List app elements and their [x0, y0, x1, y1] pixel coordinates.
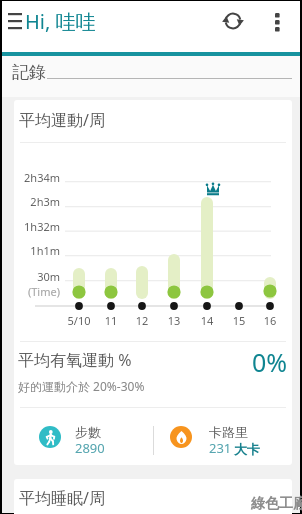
staticText: 記錄 [12, 62, 46, 83]
staticText: 231 [209, 439, 232, 457]
staticText: Hi, 哇哇 [25, 8, 96, 35]
staticText: 大卡 [234, 441, 260, 457]
staticText: 2h3m [14, 194, 60, 209]
staticText: 12 [126, 313, 158, 328]
button[interactable]: Menu [2, 7, 32, 47]
staticText: (Time) [14, 284, 60, 299]
staticText: 30m [14, 269, 60, 284]
staticText: 步數 [75, 424, 101, 440]
button[interactable]: Refresh [215, 3, 251, 39]
staticText: 卡路里 [209, 424, 248, 440]
staticText: 11 [95, 313, 127, 328]
button[interactable]: 卡路里 [161, 417, 281, 457]
staticText: 2h34m [14, 170, 60, 185]
button[interactable]: More options [264, 5, 296, 49]
staticText: 1h1m [14, 243, 60, 258]
staticText: 1h32m [14, 219, 60, 234]
staticText: 平均有氧運動 % [18, 349, 132, 371]
staticText: 綠色工廠 [251, 495, 302, 513]
staticText: 2890 [75, 439, 105, 457]
staticText: 5/10 [63, 313, 95, 328]
button[interactable]: 步數 [30, 417, 148, 457]
staticText: 好的運動介於 20%-30% [18, 378, 145, 394]
staticText: 14 [191, 313, 223, 328]
staticText: 平均運動/周 [19, 109, 105, 131]
staticText: 15 [223, 313, 255, 328]
staticText: 平均睡眠/周 [19, 487, 105, 509]
staticText: 13 [158, 313, 190, 328]
staticText: 0% [252, 345, 288, 379]
staticText: 16 [254, 313, 286, 328]
